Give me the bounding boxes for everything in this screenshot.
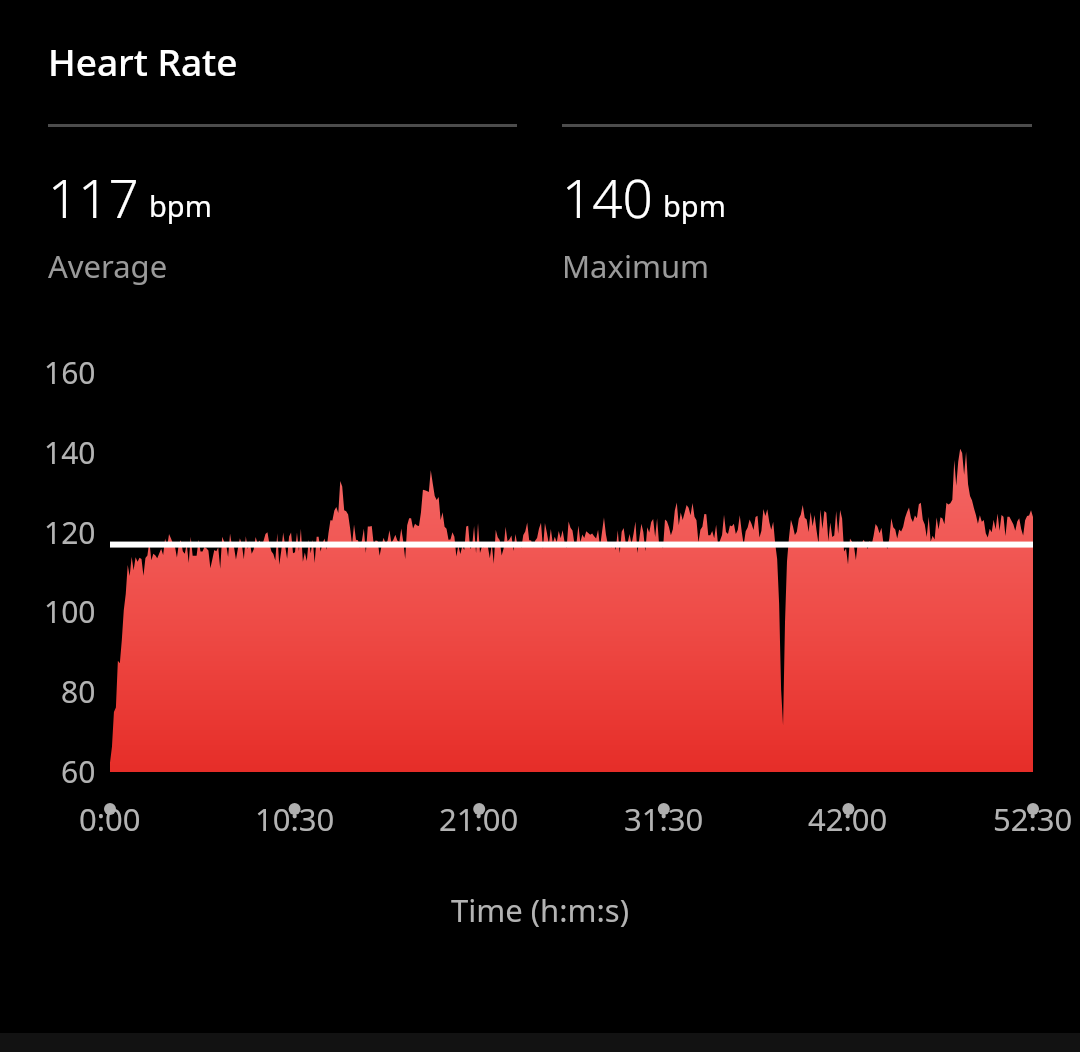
staticText: Average — [48, 245, 168, 287]
staticText: 160 — [44, 352, 96, 393]
staticText: 0:00 — [79, 798, 141, 840]
button[interactable]: Heart rate over time chart — [0, 339, 1080, 879]
staticText: 31:30 — [624, 798, 704, 840]
staticText: bpm — [149, 186, 212, 225]
staticText: bpm — [663, 186, 726, 225]
staticText: 120 — [44, 512, 96, 553]
staticText: Time (h:m:s) — [451, 889, 629, 931]
staticText: Heart Rate — [48, 36, 238, 86]
staticText: 80 — [61, 671, 96, 712]
staticText: 140 — [44, 432, 96, 473]
button[interactable]: 117 — [48, 124, 517, 287]
staticText: 10:30 — [255, 798, 335, 840]
staticText: 42:00 — [808, 798, 888, 840]
staticText: 117 — [48, 161, 139, 233]
staticText: 60 — [61, 751, 96, 792]
staticText: Maximum — [562, 245, 710, 287]
staticText: 21:00 — [439, 798, 519, 840]
staticText: 52:30 — [993, 798, 1073, 840]
staticText: 140 — [562, 161, 653, 233]
button[interactable]: 140 — [562, 124, 1032, 287]
staticText: 100 — [44, 591, 96, 632]
